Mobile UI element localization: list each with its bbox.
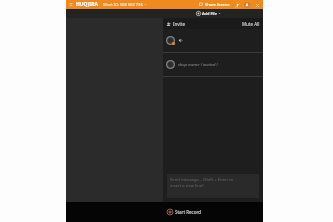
button[interactable]: Start Record [163, 202, 263, 222]
button[interactable]: Add File [194, 11, 223, 16]
button[interactable]: Share Screen [199, 2, 230, 7]
staticText: Share Screen [205, 2, 230, 7]
button[interactable]: Mute All [242, 21, 260, 27]
button[interactable]: Invite [166, 21, 185, 27]
staticText: Invite [173, 21, 185, 27]
staticText: Start Record [175, 209, 202, 215]
button[interactable]: Mute microphone [234, 2, 240, 8]
staticText: Send message... (Shift + Enter to insert… [170, 177, 234, 189]
staticText: Meet ID: 568 662 736 [103, 2, 143, 7]
button[interactable]: Send message... (Shift + Enter to insert… [167, 174, 259, 198]
staticText: HUQ)IRA [76, 1, 98, 8]
button[interactable]: shop owner ( invited ) [163, 53, 263, 76]
button[interactable]: Account [244, 2, 250, 8]
staticText: Mute All [242, 21, 260, 27]
button[interactable]: Speaker [163, 29, 263, 52]
staticText: shop owner ( invited ) [178, 62, 218, 68]
button[interactable]: Meet ID: 568 662 736 [103, 2, 147, 7]
other: Share Screen [199, 2, 204, 7]
staticText: Add File [202, 11, 217, 16]
button[interactable]: Close [254, 2, 260, 8]
other: Speaker [178, 38, 183, 43]
